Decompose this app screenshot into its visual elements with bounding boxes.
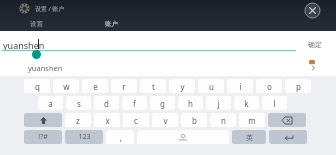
staticText: h [188, 98, 193, 109]
button[interactable]: z [65, 113, 91, 127]
staticText: 账户 [105, 20, 118, 28]
button[interactable]: k [234, 96, 259, 110]
button[interactable]: u [198, 79, 224, 93]
staticText: yuanshen [28, 63, 63, 73]
staticText: 英 [246, 133, 253, 142]
button[interactable]: l [262, 96, 287, 110]
staticText: 设置 / 账户 [35, 5, 65, 13]
staticText: o [267, 81, 272, 92]
staticText: e [93, 81, 98, 92]
staticText: v [163, 115, 168, 126]
staticText: i [239, 81, 242, 92]
button[interactable]: o [256, 79, 282, 93]
button[interactable]: Settings [19, 3, 30, 14]
button[interactable]: f [122, 96, 147, 110]
staticText: g [160, 98, 165, 109]
button[interactable]: h [178, 96, 203, 110]
staticText: 设置 [30, 20, 43, 28]
button[interactable]: 设置 [26, 20, 47, 28]
staticText: u [209, 81, 214, 92]
staticText: 确定 [308, 40, 322, 49]
staticText: m [248, 115, 256, 126]
staticText: l [273, 98, 276, 109]
staticText: yuanshen [3, 39, 45, 51]
staticText: d [104, 98, 109, 109]
button[interactable]: w [53, 79, 79, 93]
button[interactable]: 账户 [101, 20, 122, 28]
button[interactable]: t [140, 79, 166, 93]
button[interactable]: , [106, 130, 134, 144]
button[interactable]: Space [137, 130, 229, 144]
staticText: z [76, 115, 80, 126]
staticText: b [192, 115, 197, 126]
staticText: q [35, 81, 40, 92]
button[interactable]: 确定 [308, 40, 322, 49]
staticText: , [119, 132, 122, 143]
button[interactable]: Shift [24, 113, 62, 127]
button[interactable]: c [123, 113, 149, 127]
staticText: j [217, 98, 220, 109]
staticText: r [122, 81, 126, 92]
staticText: 123 [78, 132, 91, 142]
button[interactable]: More candidates [308, 63, 318, 73]
staticText: s [77, 98, 81, 109]
staticText: a [48, 98, 53, 109]
button[interactable]: x [94, 113, 120, 127]
button[interactable]: !?# [24, 130, 62, 144]
button[interactable]: n [210, 113, 236, 127]
button[interactable]: y [169, 79, 195, 93]
button[interactable]: j [206, 96, 231, 110]
button[interactable]: p [285, 79, 311, 93]
button[interactable]: Enter [269, 130, 307, 144]
staticText: f [133, 98, 136, 109]
button[interactable]: Close [305, 3, 320, 18]
staticText: c [134, 115, 138, 126]
staticText: n [221, 115, 226, 126]
button[interactable]: e [82, 79, 108, 93]
staticText: y [180, 81, 185, 92]
button[interactable]: 英 [232, 130, 266, 144]
button[interactable]: g [150, 96, 175, 110]
button[interactable]: b [181, 113, 207, 127]
button[interactable]: Backspace [268, 113, 306, 127]
staticText: k [244, 98, 249, 109]
staticText: x [105, 115, 110, 126]
button[interactable]: 123 [65, 130, 103, 144]
button[interactable]: s [66, 96, 91, 110]
staticText: p [296, 81, 301, 92]
staticText: w [63, 81, 70, 92]
button[interactable]: q [24, 79, 50, 93]
staticText: !?# [38, 132, 48, 142]
button[interactable]: v [152, 113, 178, 127]
button[interactable]: a [38, 96, 63, 110]
button[interactable]: r [111, 79, 137, 93]
staticText: t [152, 81, 155, 92]
button[interactable]: m [239, 113, 265, 127]
button[interactable]: i [227, 79, 253, 93]
button[interactable]: d [94, 96, 119, 110]
